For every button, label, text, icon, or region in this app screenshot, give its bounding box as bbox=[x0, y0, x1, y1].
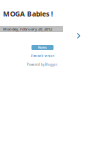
staticText: MOGA Babies ! bbox=[3, 9, 53, 18]
staticText: Home bbox=[38, 45, 47, 49]
button[interactable]: View web version bbox=[30, 54, 54, 58]
button[interactable]: Home bbox=[31, 45, 53, 50]
staticText: Monday, February 20, 2012 bbox=[3, 26, 52, 32]
staticText: Powered by bbox=[27, 63, 44, 66]
button[interactable]: Blogger. bbox=[45, 63, 58, 66]
staticText: View web version bbox=[30, 54, 54, 58]
button[interactable]: Next page bbox=[73, 29, 85, 43]
staticText: Blogger. bbox=[45, 63, 58, 66]
